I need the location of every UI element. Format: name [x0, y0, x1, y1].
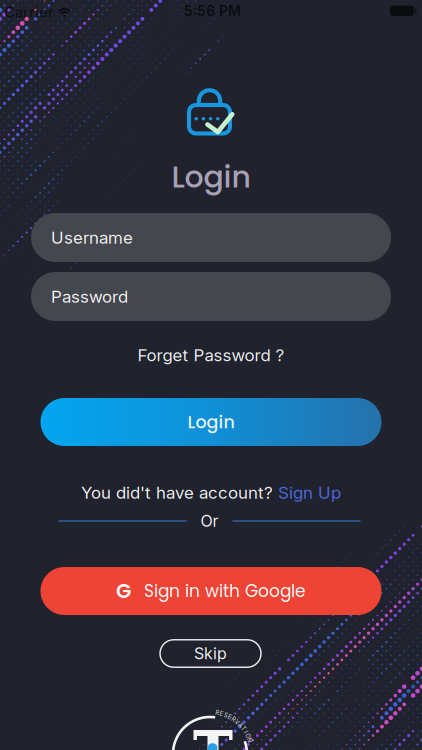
staticText: Carrier	[4, 3, 54, 21]
button[interactable]: Login	[40, 398, 381, 446]
staticText: Password	[51, 286, 128, 307]
staticText: Forget Password ?	[137, 345, 284, 365]
staticText: N	[247, 737, 252, 744]
staticText: E	[220, 710, 224, 717]
staticText: V	[235, 718, 239, 726]
staticText: R	[215, 709, 219, 716]
button[interactable]: Sign Up	[278, 482, 341, 503]
staticText: Login	[187, 410, 234, 434]
staticText: E	[228, 713, 232, 721]
staticText: 5:56 PM	[184, 3, 241, 19]
staticText: Sign in with Google	[144, 579, 306, 603]
staticText: Username	[51, 227, 133, 248]
staticText: Login	[171, 156, 250, 198]
button[interactable]: Forget Password ?	[137, 345, 284, 365]
button[interactable]: Password	[31, 272, 391, 321]
staticText: You did't have account?	[81, 482, 273, 503]
staticText: G	[116, 577, 131, 605]
staticText: R	[232, 716, 236, 723]
staticText: A	[238, 722, 242, 729]
staticText: S	[224, 712, 228, 719]
button[interactable]: G	[40, 567, 381, 615]
staticText: O	[245, 733, 250, 740]
button[interactable]: Skip	[160, 640, 261, 667]
staticText: Or	[200, 512, 218, 530]
staticText: I	[245, 729, 247, 736]
button[interactable]: Username	[31, 213, 391, 262]
staticText: T	[241, 725, 245, 732]
staticText: Sign Up	[278, 482, 341, 503]
staticText: Skip	[194, 644, 227, 663]
